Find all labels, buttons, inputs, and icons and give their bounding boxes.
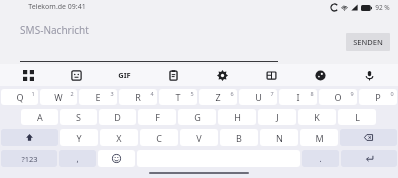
button[interactable]: Translate (247, 64, 296, 86)
button[interactable]: Z (199, 89, 237, 105)
button[interactable]: G (178, 109, 216, 125)
button[interactable]: Shift (1, 129, 58, 146)
staticText: C (156, 132, 162, 144)
staticText: Z (215, 91, 221, 103)
button[interactable]: H (218, 109, 256, 125)
staticText: O (334, 91, 342, 103)
staticText: SENDEN (353, 37, 383, 47)
staticText: B (236, 132, 242, 144)
staticText: J (276, 111, 279, 123)
staticText: 2 (70, 90, 74, 97)
button[interactable]: Q (1, 89, 38, 105)
button[interactable]: P (359, 89, 397, 105)
staticText: G (194, 111, 201, 123)
staticText: . (319, 153, 322, 164)
staticText: 8 (310, 90, 314, 97)
staticText: V (196, 132, 202, 144)
button[interactable]: Emoji (98, 150, 135, 167)
button[interactable]: ?123 (1, 150, 57, 167)
button[interactable]: B (220, 129, 258, 146)
staticText: SMS-Nachricht (20, 23, 89, 37)
staticText: D (114, 111, 121, 123)
button[interactable]: T (159, 89, 197, 105)
staticText: 3 (110, 90, 114, 97)
staticText: 0 (390, 90, 394, 97)
staticText: Q (16, 91, 24, 103)
button[interactable]: A (21, 109, 58, 125)
staticText: , (76, 153, 79, 164)
button[interactable]: . (302, 150, 339, 167)
staticText: 7 (270, 90, 274, 97)
button[interactable]: U (239, 89, 277, 105)
staticText: N (276, 132, 283, 144)
button[interactable]: Y (60, 129, 98, 146)
button[interactable]: J (258, 109, 296, 125)
staticText: E (95, 91, 101, 103)
staticText: Y (76, 132, 82, 144)
staticText: S (76, 111, 81, 123)
button[interactable]: Clipboard (149, 64, 198, 86)
staticText: P (375, 91, 381, 103)
button[interactable]: O (319, 89, 357, 105)
button[interactable]: Voice input (345, 64, 394, 86)
button[interactable]: X (100, 129, 138, 146)
staticText: T (175, 91, 181, 103)
button[interactable]: Stickers (52, 64, 100, 86)
staticText: 4 (150, 90, 154, 97)
button[interactable]: C (140, 129, 178, 146)
staticText: M (315, 132, 324, 144)
staticText: 9 (350, 90, 354, 97)
staticText: W (54, 91, 63, 103)
staticText: L (355, 111, 360, 123)
staticText: 92 % (375, 3, 390, 12)
button[interactable]: R (119, 89, 157, 105)
staticText: Telekom.de 09:41 (28, 2, 86, 12)
button[interactable]: , (59, 150, 96, 167)
button[interactable]: D (99, 109, 136, 125)
button[interactable]: L (338, 109, 376, 125)
staticText: R (135, 91, 141, 103)
staticText: A (37, 111, 43, 123)
button[interactable]: I (279, 89, 317, 105)
staticText: GIF (118, 70, 131, 80)
button[interactable]: SENDEN (346, 33, 390, 51)
staticText: X (116, 132, 122, 144)
staticText: ?123 (21, 154, 38, 164)
button[interactable]: Backspace (340, 129, 397, 146)
staticText: U (255, 91, 262, 103)
button[interactable]: E (79, 89, 117, 105)
staticText: I (296, 91, 300, 103)
button[interactable]: K (298, 109, 336, 125)
button[interactable]: Symbols (4, 64, 52, 86)
button[interactable]: Enter (341, 150, 397, 167)
button[interactable]: W (40, 89, 77, 105)
staticText: K (314, 111, 320, 123)
staticText: H (234, 111, 241, 123)
staticText: 5 (190, 90, 194, 97)
button[interactable]: V (180, 129, 218, 146)
staticText: F (155, 111, 160, 123)
button[interactable]: M (300, 129, 338, 146)
button[interactable]: Settings (198, 64, 247, 86)
staticText: 6 (230, 90, 234, 97)
button[interactable]: S (60, 109, 97, 125)
button[interactable]: F (138, 109, 176, 125)
button[interactable]: Themes (296, 64, 345, 86)
staticText: 1 (31, 90, 35, 97)
button[interactable]: N (260, 129, 298, 146)
button[interactable]: GIF (100, 64, 149, 86)
